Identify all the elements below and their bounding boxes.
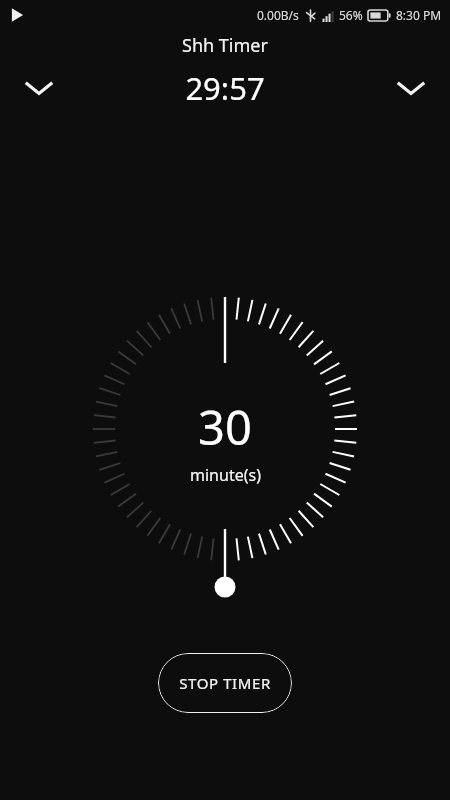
button[interactable]: Increase <box>383 60 439 116</box>
staticText: 8:30 PM <box>396 7 442 23</box>
staticText: 29:57 <box>185 67 265 109</box>
button[interactable]: Decrease <box>11 60 67 116</box>
staticText: 30 <box>198 395 252 459</box>
staticText: STOP TIMER <box>179 673 271 693</box>
staticText: 0.00B/s <box>257 7 299 23</box>
staticText: minute(s) <box>190 464 261 486</box>
button[interactable]: Timer duration dial <box>0 290 450 610</box>
staticText: 56% <box>339 7 363 23</box>
staticText: Shh Timer <box>182 33 268 58</box>
button[interactable]: STOP TIMER <box>158 653 292 713</box>
